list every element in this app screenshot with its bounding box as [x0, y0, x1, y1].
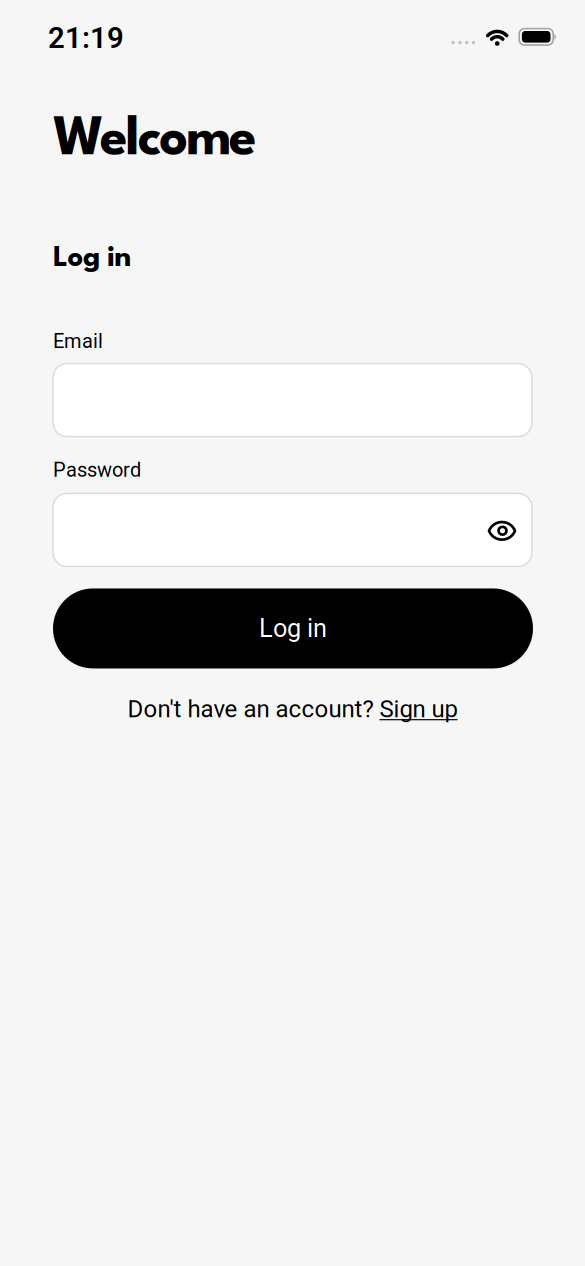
- button[interactable]: Password: [53, 493, 532, 566]
- staticText: Password: [53, 459, 141, 481]
- button[interactable]: Log in: [53, 588, 533, 668]
- staticText: Log in: [53, 244, 131, 273]
- staticText: Don't have an account?: [127, 695, 379, 723]
- staticText: 21:19: [48, 21, 124, 55]
- button[interactable]: Show password: [489, 520, 532, 539]
- button[interactable]: Sign up: [379, 695, 457, 723]
- staticText: Email: [53, 330, 103, 353]
- staticText: Log in: [259, 614, 327, 643]
- staticText: Welcome: [53, 115, 257, 166]
- staticText: Sign up: [379, 695, 457, 723]
- button[interactable]: Email: [53, 364, 532, 437]
